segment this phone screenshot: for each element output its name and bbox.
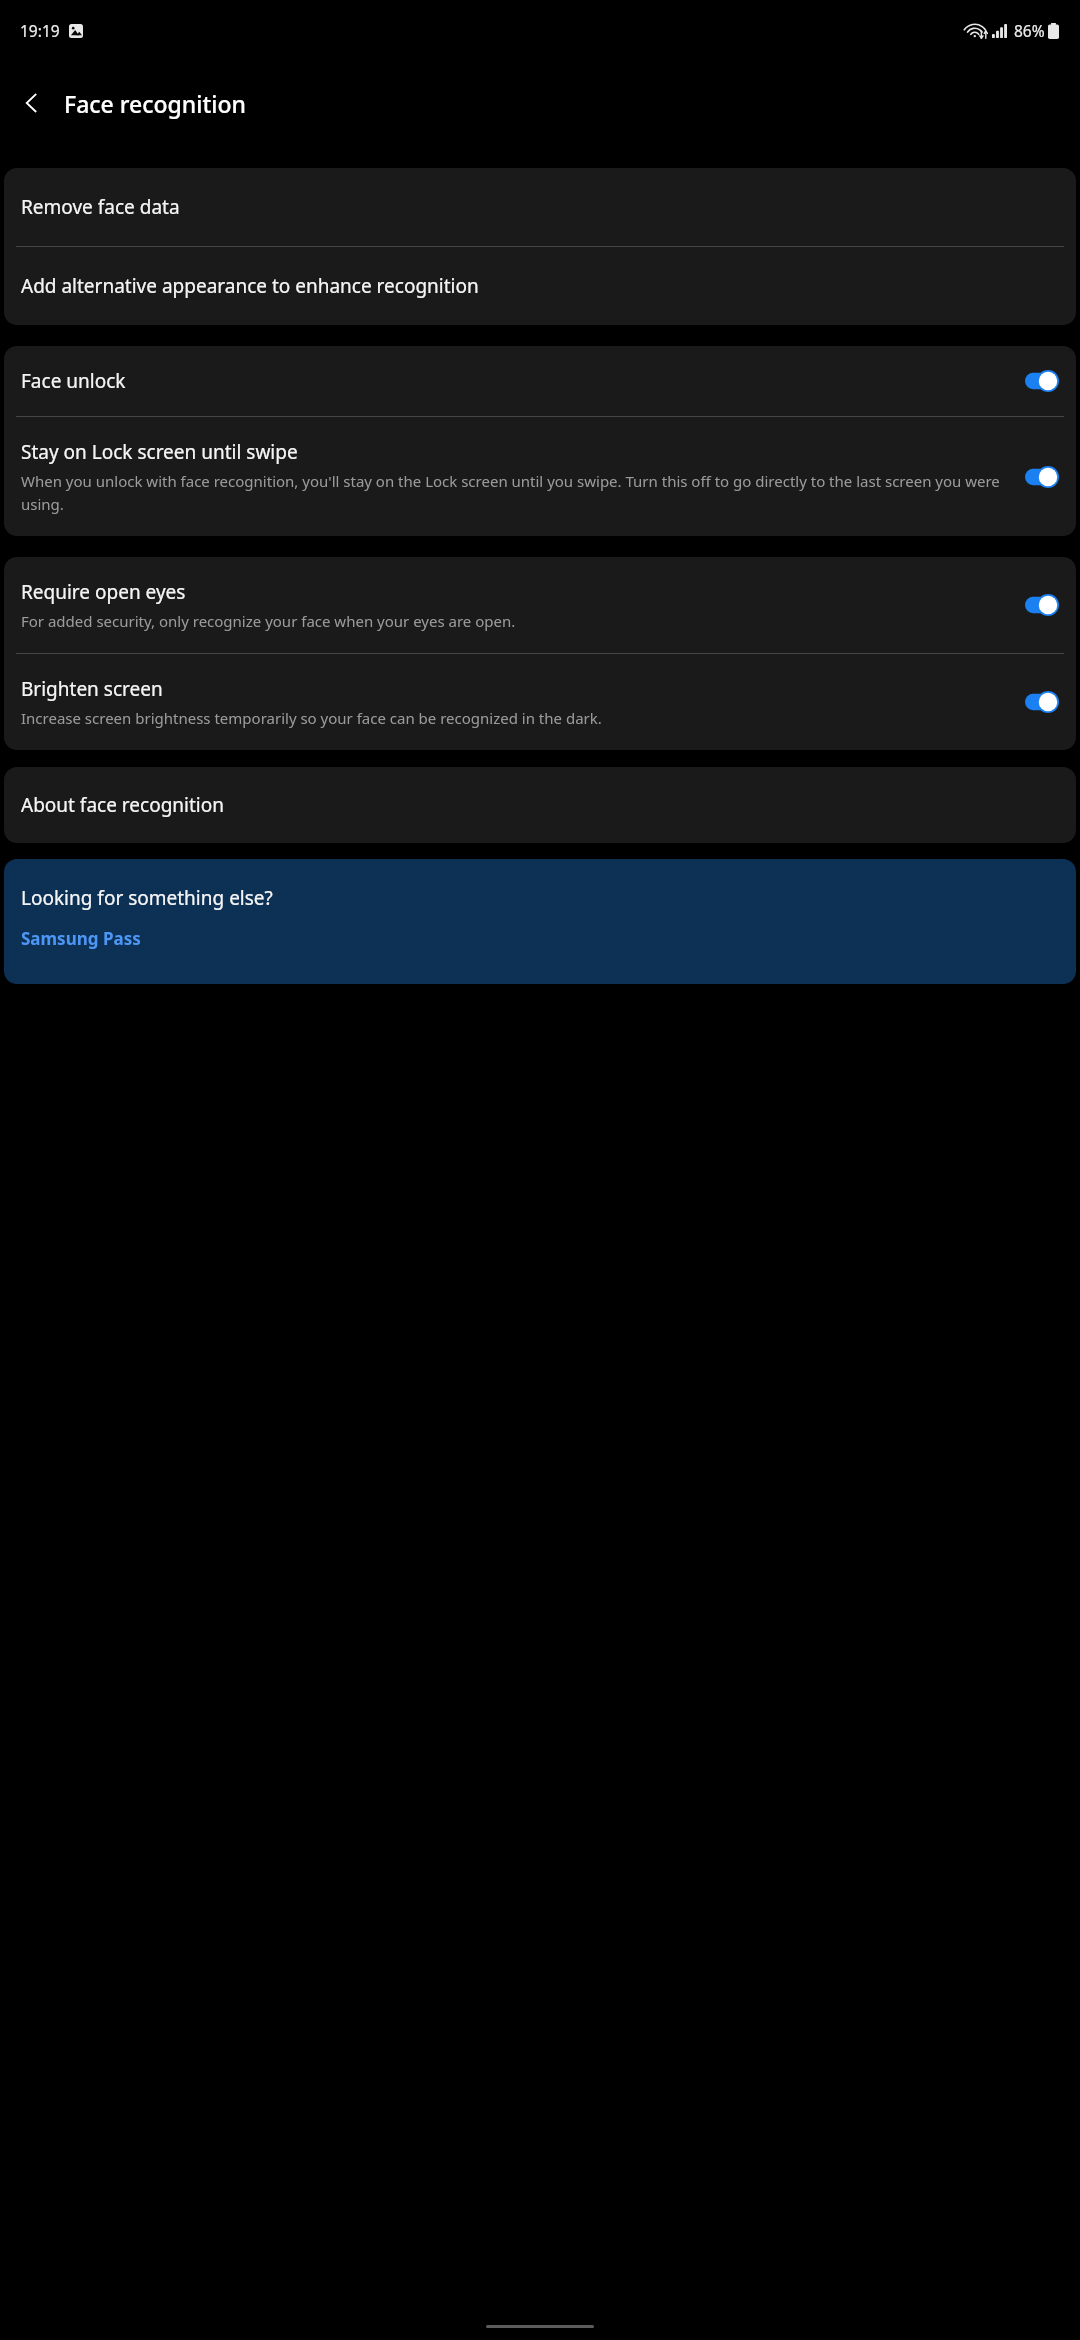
button[interactable]: Remove face data <box>4 168 1076 246</box>
staticText: Looking for something else? <box>21 885 273 911</box>
staticText: 86% <box>1014 20 1045 41</box>
staticText: Samsung Pass <box>21 927 141 950</box>
button[interactable]: Stay on Lock screen until swipe <box>4 417 1076 536</box>
button[interactable]: Back <box>8 79 56 127</box>
button[interactable]: Brighten screen <box>4 654 1076 750</box>
staticText: 19:19 <box>20 20 60 41</box>
button[interactable]: Require open eyes <box>4 557 1076 653</box>
button[interactable]: Toggle <box>1025 691 1059 713</box>
button[interactable]: About face recognition <box>4 767 1076 843</box>
staticText: Face recognition <box>64 88 246 119</box>
staticText: Stay on Lock screen until swipe <box>21 439 298 465</box>
button[interactable]: Add alternative appearance to enhance re… <box>4 247 1076 325</box>
button[interactable]: Samsung Pass <box>21 927 141 950</box>
staticText: Add alternative appearance to enhance re… <box>21 273 479 299</box>
button[interactable]: Toggle <box>1025 370 1059 392</box>
staticText: Remove face data <box>21 194 180 220</box>
staticText: Face unlock <box>21 368 126 394</box>
staticText: Require open eyes <box>21 579 186 605</box>
staticText: When you unlock with face recognition, y… <box>21 471 1011 514</box>
staticText: About face recognition <box>21 792 224 818</box>
staticText: For added security, only recognize your … <box>21 611 516 631</box>
button[interactable]: Toggle <box>1025 594 1059 616</box>
button[interactable]: Face unlock <box>4 346 1076 416</box>
staticText: Increase screen brightness temporarily s… <box>21 708 602 728</box>
staticText: Brighten screen <box>21 676 163 702</box>
button[interactable]: Toggle <box>1025 466 1059 488</box>
